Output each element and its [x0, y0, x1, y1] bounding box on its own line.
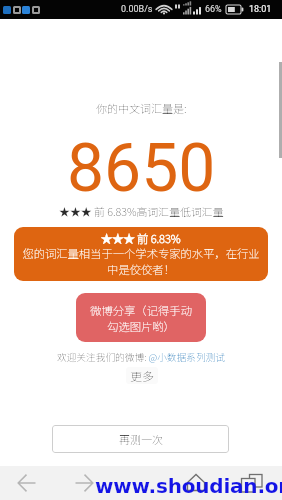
staticText: 您的词汇量相当于一个学术专家的水平，在行业中是佼佼者！	[21, 245, 261, 277]
button[interactable]: 微博分享（记得手动 勾选图片哟）	[76, 293, 206, 342]
button[interactable]: Recents	[234, 466, 268, 500]
button[interactable]: Forward	[67, 466, 101, 500]
staticText: ★★★ 前 6.83%高词汇量低词汇量	[59, 203, 224, 219]
staticText: 你的中文词汇量是:	[96, 100, 187, 116]
staticText: 66%	[205, 4, 222, 15]
staticText: 更多	[130, 367, 155, 384]
staticText: 0.00B/s	[121, 4, 153, 15]
staticText: 8650	[67, 130, 216, 207]
button[interactable]: 再测一次	[52, 425, 229, 453]
button[interactable]: Back	[10, 466, 44, 500]
staticText: 欢迎关注我们的微博: @小数据系列测试	[57, 350, 225, 364]
button[interactable]: Home	[179, 466, 213, 500]
button[interactable]: 更多	[126, 367, 158, 384]
staticText: 18:01	[249, 4, 272, 15]
staticText: www.shoudian.org	[95, 474, 282, 497]
button[interactable]: ★★★ 前 6.83%	[14, 227, 268, 281]
staticText: 再测一次	[119, 431, 163, 447]
staticText: 微博分享（记得手动 勾选图片哟）	[90, 302, 192, 334]
staticText: ★★★ 前 6.83%	[101, 230, 181, 246]
